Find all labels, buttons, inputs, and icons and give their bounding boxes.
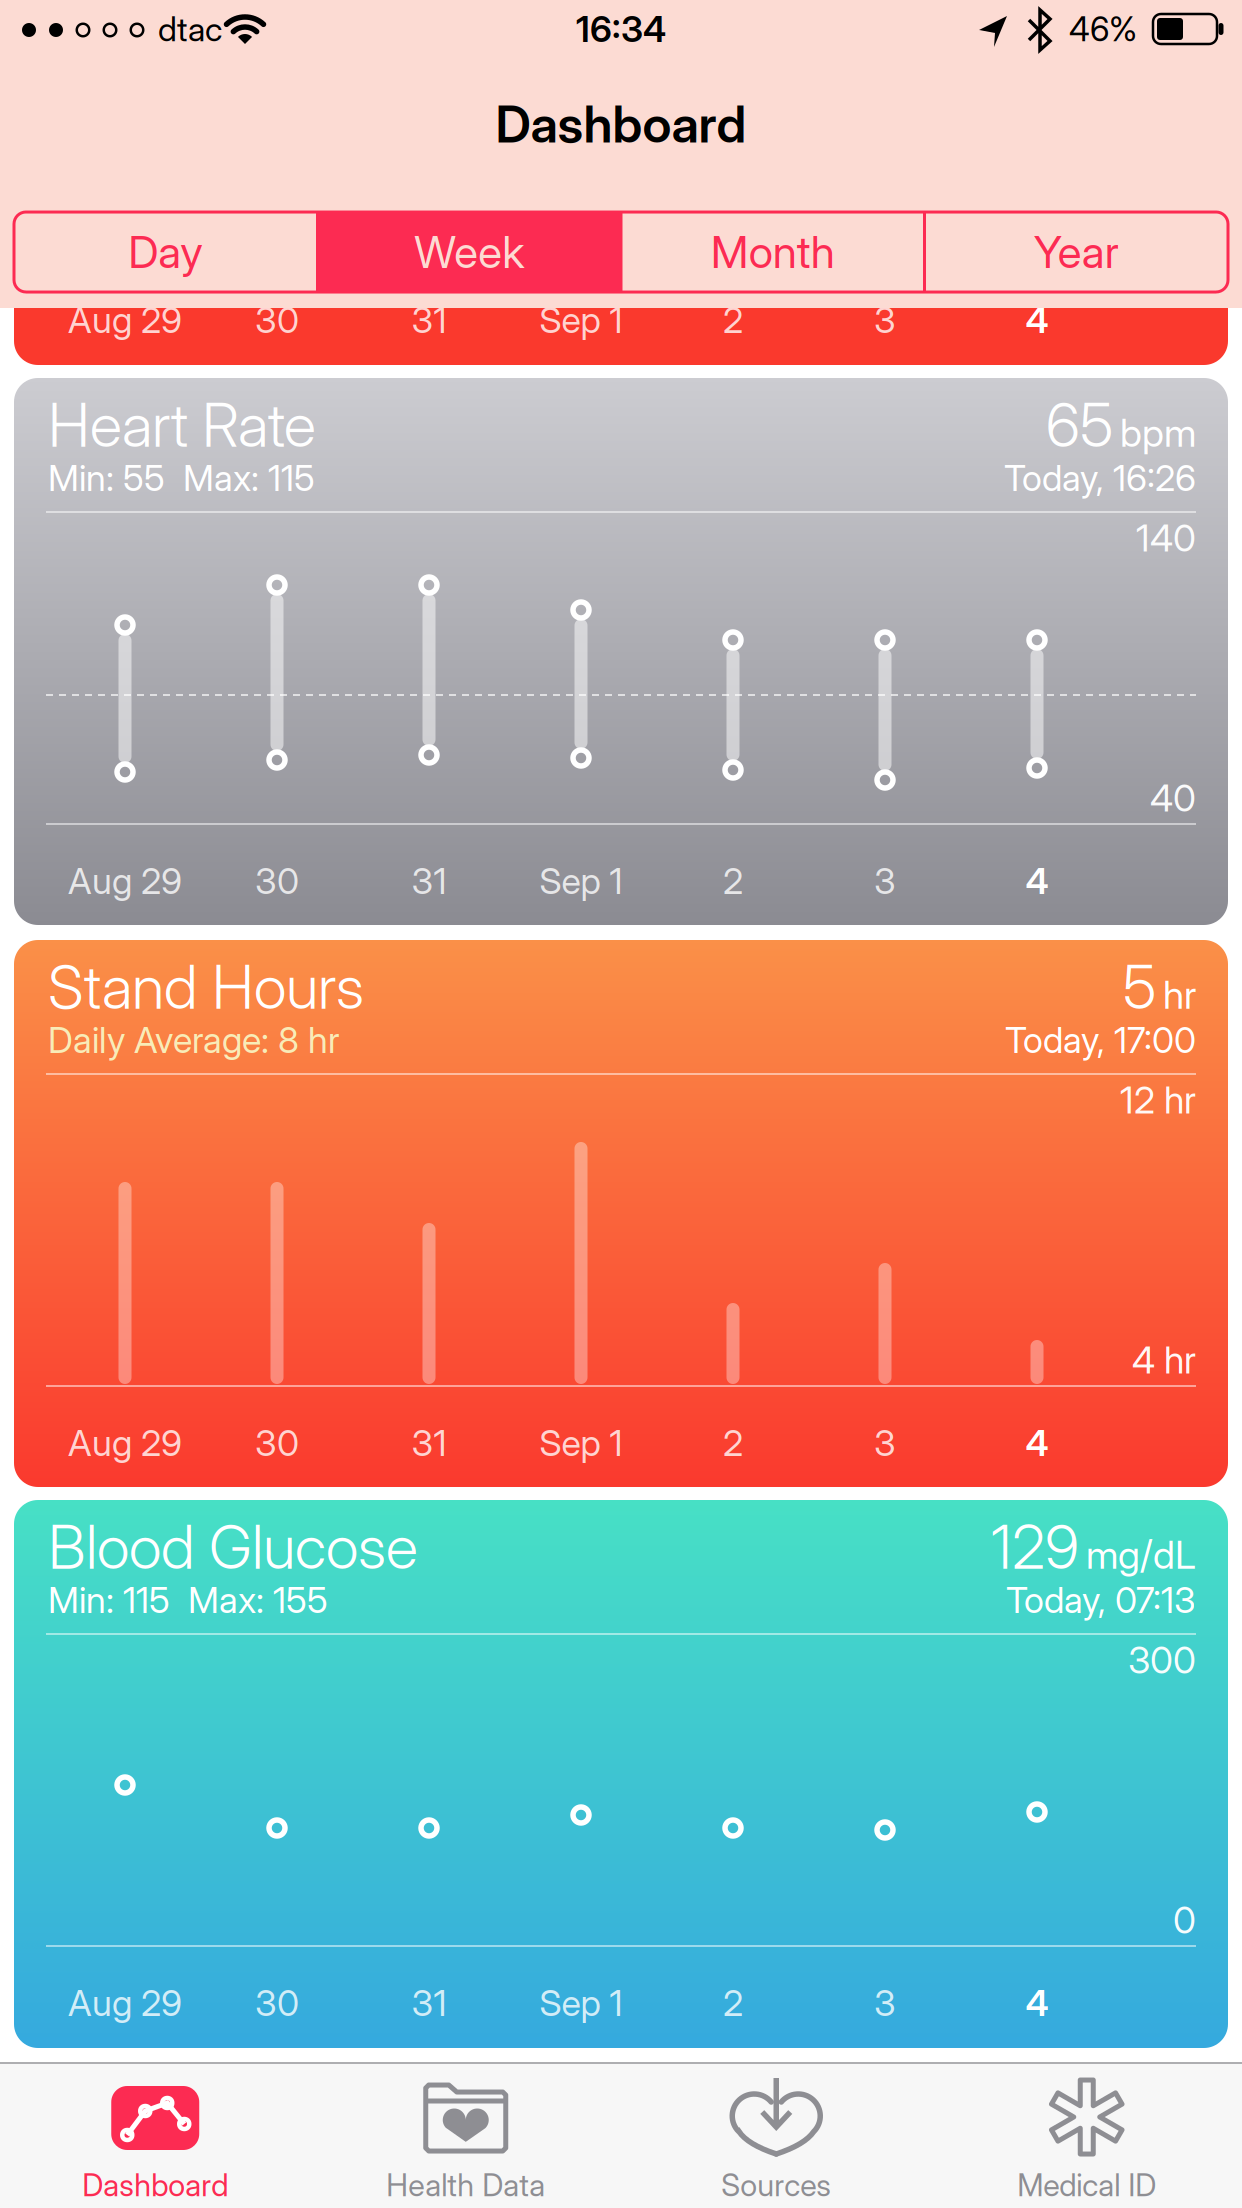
staticText: 2: [723, 860, 743, 902]
staticText: bpm: [1120, 410, 1196, 456]
staticText: 65: [1046, 390, 1113, 460]
staticText: Sep 1: [539, 299, 622, 341]
staticText: 0: [1173, 1898, 1196, 1942]
staticText: 2: [723, 1422, 743, 1464]
staticText: 2: [723, 299, 743, 341]
staticText: 129: [991, 1512, 1079, 1582]
staticText: 3: [874, 860, 896, 902]
staticText: Sep 1: [539, 1982, 622, 2024]
staticText: Min: 55 Max: 115: [48, 457, 315, 499]
button[interactable]: Blood Glucose: [14, 1500, 1228, 2048]
staticText: mg/dL: [1086, 1532, 1196, 1578]
staticText: 31: [411, 860, 446, 902]
staticText: 4: [1025, 1422, 1048, 1464]
staticText: 3: [874, 1422, 896, 1464]
staticText: 12 hr: [1120, 1078, 1196, 1122]
staticText: Daily Average: 8 hr: [48, 1019, 340, 1061]
staticText: 46%: [1069, 9, 1137, 49]
button[interactable]: Week: [324, 212, 614, 292]
button[interactable]: Medical ID: [932, 2062, 1242, 2208]
staticText: 4: [1025, 1982, 1048, 2024]
staticText: Aug 29: [68, 1982, 182, 2024]
staticText: 30: [255, 299, 299, 341]
button[interactable]: Month: [628, 212, 918, 292]
staticText: 16:34: [576, 8, 666, 50]
button[interactable]: Stand Hours: [14, 940, 1228, 1487]
staticText: Today, 17:00: [1005, 1019, 1196, 1061]
staticText: Stand Hours: [48, 952, 364, 1022]
staticText: Aug 29: [68, 1422, 182, 1464]
staticText: Month: [711, 226, 835, 278]
button[interactable]: Active Energy: [14, 255, 1228, 365]
staticText: Year: [1034, 226, 1119, 278]
staticText: 31: [411, 299, 446, 341]
staticText: 31: [411, 1422, 446, 1464]
staticText: Health Data: [386, 2167, 545, 2203]
staticText: Sources: [721, 2167, 831, 2203]
staticText: Day: [128, 226, 203, 278]
staticText: Heart Rate: [48, 390, 316, 460]
staticText: Sep 1: [539, 860, 622, 902]
staticText: Dashboard: [495, 94, 746, 154]
staticText: 2: [723, 1982, 743, 2024]
staticText: 4: [1025, 299, 1048, 341]
button[interactable]: Sources: [621, 2062, 931, 2208]
staticText: Sep 1: [539, 1422, 622, 1464]
staticText: Blood Glucose: [48, 1512, 418, 1582]
staticText: Today, 07:13: [1006, 1579, 1196, 1621]
button[interactable]: Health Data: [311, 2062, 621, 2208]
staticText: 30: [255, 1982, 299, 2024]
staticText: 300: [1128, 1638, 1196, 1682]
staticText: Aug 29: [68, 299, 182, 341]
staticText: Min: 115 Max: 155: [48, 1579, 328, 1621]
staticText: Aug 29: [68, 860, 182, 902]
staticText: Dashboard: [82, 2167, 228, 2203]
button[interactable]: Day: [21, 212, 311, 292]
staticText: 4 hr: [1132, 1338, 1196, 1382]
staticText: dtac: [158, 9, 222, 49]
staticText: Medical ID: [1017, 2167, 1156, 2203]
staticText: hr: [1163, 972, 1196, 1018]
staticText: Today, 16:26: [1004, 457, 1196, 499]
staticText: 4: [1025, 860, 1048, 902]
staticText: 3: [874, 299, 896, 341]
button[interactable]: Year: [931, 212, 1221, 292]
staticText: 31: [411, 1982, 446, 2024]
button[interactable]: Dashboard: [0, 2062, 310, 2208]
staticText: 30: [255, 1422, 299, 1464]
staticText: 140: [1136, 516, 1196, 560]
staticText: 40: [1150, 776, 1196, 820]
staticText: Week: [414, 226, 524, 278]
button[interactable]: Heart Rate: [14, 378, 1228, 925]
staticText: 3: [874, 1982, 896, 2024]
staticText: 30: [255, 860, 299, 902]
staticText: 5: [1123, 952, 1156, 1022]
